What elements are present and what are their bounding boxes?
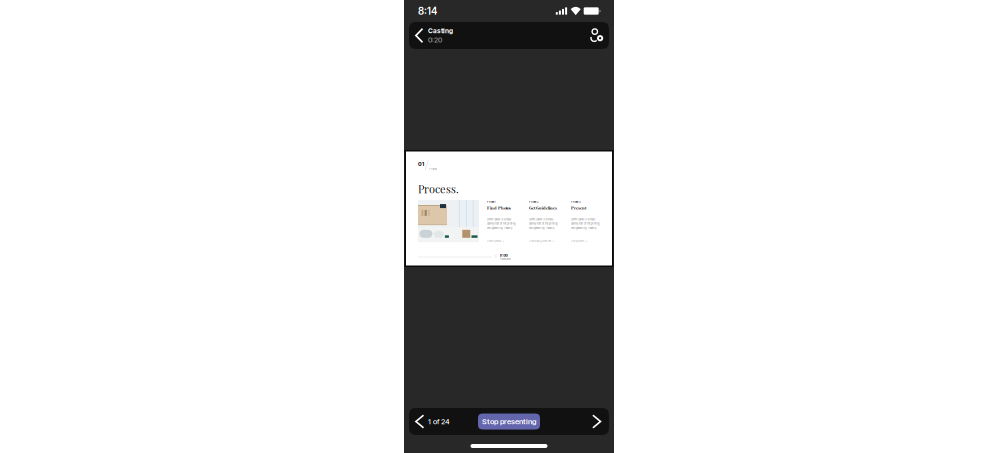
staticText: See projects → bbox=[571, 239, 587, 243]
staticText: Casting bbox=[428, 27, 453, 35]
staticText: Present bbox=[571, 205, 587, 211]
staticText: 17:00 bbox=[499, 253, 507, 258]
staticText: Lorem ipsum is simply bbox=[571, 218, 595, 221]
staticText: dummy text of the printing bbox=[571, 222, 600, 225]
staticText: dummy text of the printing bbox=[529, 222, 558, 225]
staticText: 01 bbox=[418, 160, 424, 167]
button[interactable]: Add people bbox=[590, 24, 609, 47]
staticText: Project bbox=[429, 167, 437, 170]
button[interactable]: 1 of 24 bbox=[409, 409, 454, 433]
staticText: Stop presenting bbox=[482, 417, 536, 426]
staticText: Presentation bbox=[499, 258, 510, 261]
staticText: Process. bbox=[418, 181, 459, 196]
staticText: Search photos → bbox=[487, 239, 504, 243]
staticText: Lorem ipsum is simply bbox=[487, 218, 511, 221]
staticText: dummy text of the printing bbox=[487, 222, 516, 225]
staticText: Phase 3 bbox=[571, 200, 581, 203]
button[interactable]: Stop presenting bbox=[478, 413, 540, 429]
staticText: Get Guidelines bbox=[529, 205, 557, 211]
staticText: Lorem ipsum is simply bbox=[529, 218, 553, 221]
staticText: and typesetting industry. bbox=[571, 226, 597, 229]
staticText: 1 of 24 bbox=[428, 417, 450, 426]
staticText: Phase 1 bbox=[487, 200, 496, 203]
staticText: Find Photos bbox=[487, 205, 511, 211]
button[interactable]: Next slide bbox=[588, 409, 609, 433]
staticText: 2 bbox=[495, 255, 496, 259]
staticText: 0:20 bbox=[428, 36, 442, 44]
staticText: and typesetting industry. bbox=[529, 226, 555, 229]
button[interactable]: Casting bbox=[409, 24, 453, 47]
staticText: 8:14 bbox=[418, 5, 437, 17]
staticText: Download guidelines → bbox=[529, 239, 554, 243]
staticText: Phase 2 bbox=[529, 200, 539, 203]
staticText: and typesetting industry. bbox=[487, 226, 513, 229]
